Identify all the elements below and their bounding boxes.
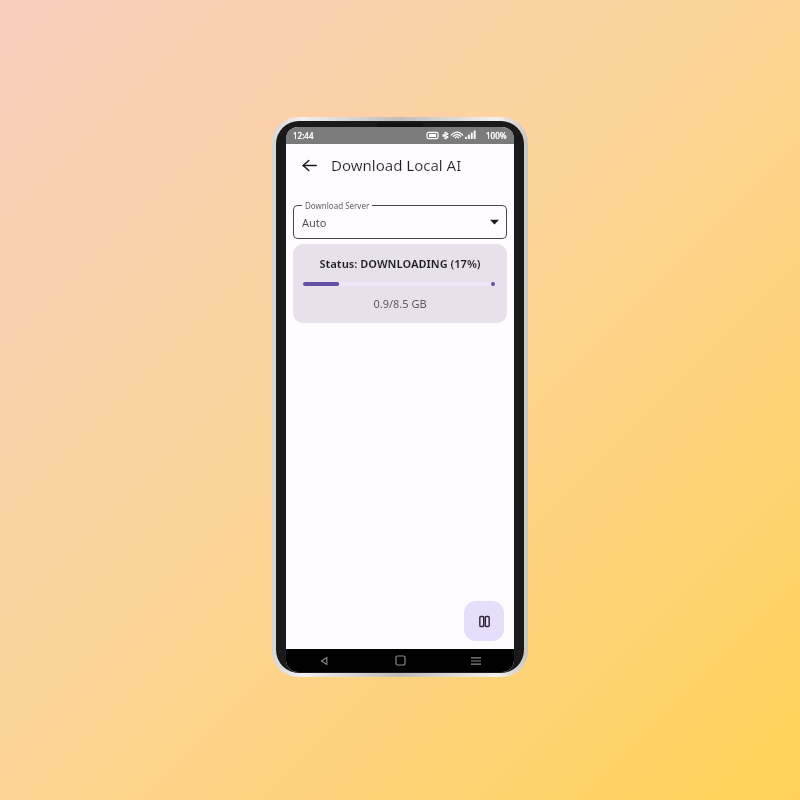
button[interactable]: Home — [362, 649, 438, 672]
button[interactable]: Back — [294, 150, 324, 180]
staticText: 12:44 — [293, 130, 314, 141]
button[interactable]: Pause download — [464, 601, 504, 641]
staticText: Auto — [302, 215, 327, 230]
staticText: Download Local AI — [331, 155, 462, 175]
staticText: 100% — [486, 130, 507, 141]
staticText: Download Server — [305, 200, 370, 211]
button[interactable]: Status: DOWNLOADING (17%) — [293, 244, 507, 323]
button[interactable]: Back — [286, 649, 362, 672]
staticText: 0.9/8.5 GB — [305, 296, 495, 311]
button[interactable]: Auto — [293, 205, 507, 239]
button[interactable]: Recents — [438, 649, 514, 672]
staticText: Status: DOWNLOADING (17%) — [305, 256, 495, 271]
